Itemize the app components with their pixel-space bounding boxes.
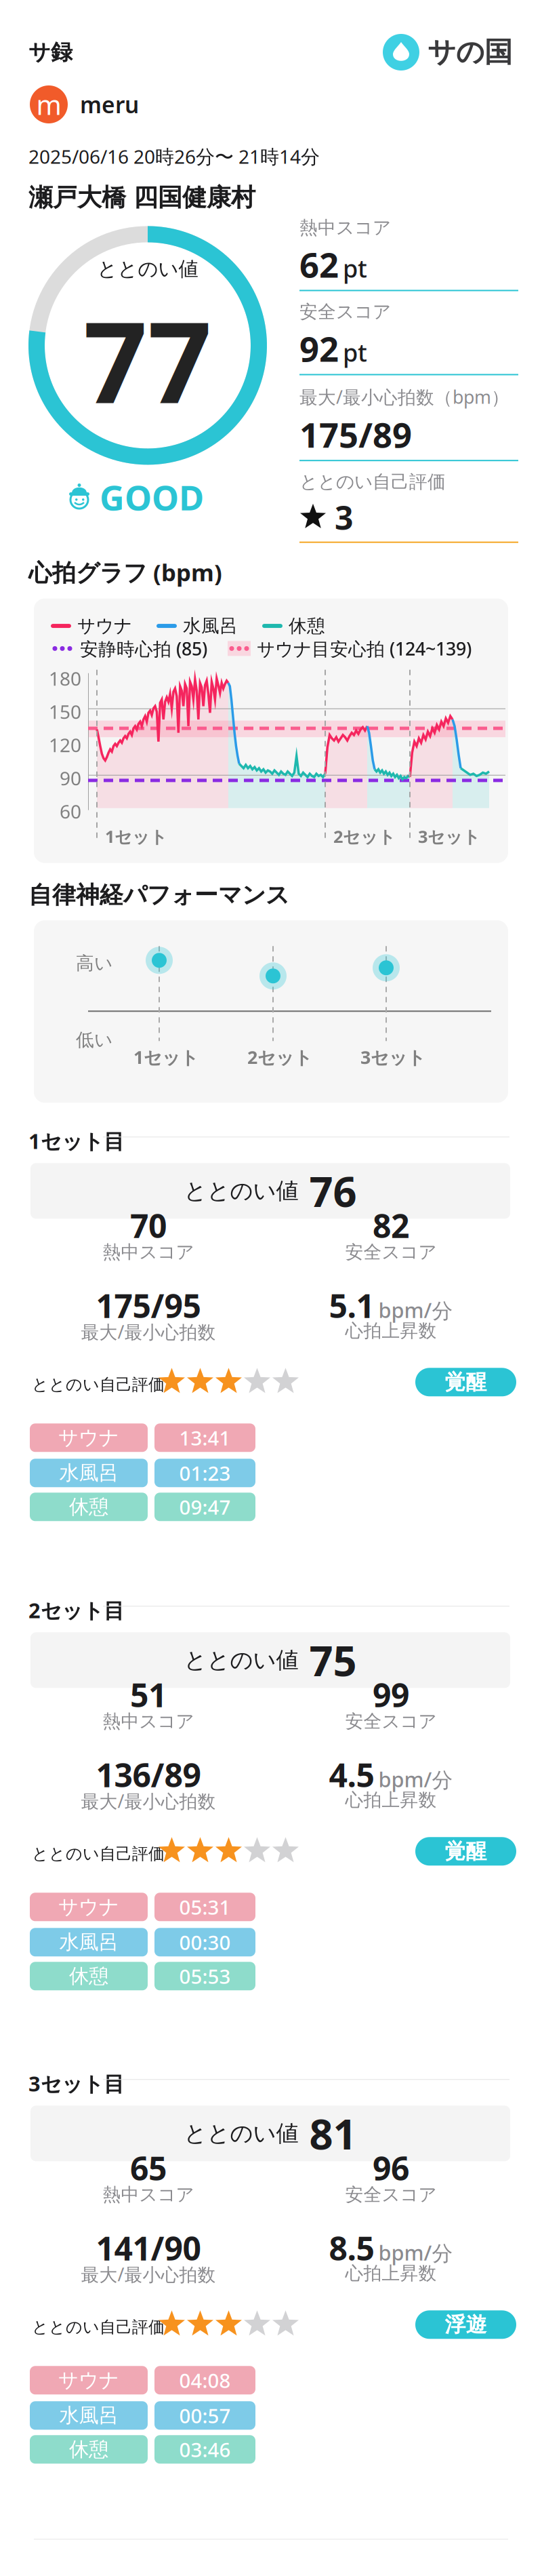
button[interactable]: 浮遊: [415, 2310, 516, 2339]
staticText: 4.5: [329, 1753, 374, 1796]
staticText: 瀬戸大橋 四国健康村: [28, 183, 255, 213]
staticText: サの国: [428, 35, 512, 69]
staticText: 05:31: [179, 1894, 231, 1920]
staticText: サウナ: [77, 615, 132, 637]
staticText: 96: [373, 2146, 409, 2189]
staticText: 水風呂: [59, 1930, 118, 1954]
staticText: サ録: [28, 39, 72, 66]
staticText: ととのい自己評価: [32, 2317, 165, 2337]
staticText: GOOD: [100, 474, 204, 520]
staticText: meru: [80, 89, 139, 119]
staticText: 09:47: [179, 1494, 231, 1520]
staticText: サウナ目安心拍 (124~139): [257, 637, 472, 661]
staticText: 熱中スコア: [103, 1710, 194, 1733]
staticText: 82: [373, 1204, 409, 1247]
staticText: サウナ: [58, 1426, 119, 1450]
staticText: 水風呂: [59, 1461, 118, 1485]
staticText: 99: [373, 1673, 409, 1716]
staticText: 熱中スコア: [103, 1241, 194, 1263]
staticText: 3セット: [418, 825, 480, 848]
staticText: pt: [343, 336, 367, 368]
staticText: bpm/分: [378, 1296, 453, 1324]
staticText: 05:53: [179, 1963, 231, 1989]
staticText: サウナ: [58, 1895, 119, 1919]
staticText: 77: [83, 285, 212, 434]
staticText: 5.1: [329, 1284, 374, 1327]
staticText: 覚醒: [445, 1369, 487, 1395]
staticText: 休憩: [69, 1495, 108, 1519]
staticText: 低い: [76, 1029, 112, 1051]
staticText: 90: [60, 765, 81, 791]
staticText: 00:57: [179, 2402, 231, 2429]
staticText: 安全スコア: [345, 1241, 437, 1263]
staticText: 150: [49, 699, 81, 724]
staticText: ととのい自己評価: [32, 1375, 165, 1395]
staticText: ととのい値: [97, 257, 198, 281]
staticText: 安全スコア: [345, 2184, 437, 2206]
staticText: 最大/最小心拍数（bpm）: [299, 385, 509, 409]
staticText: 水風呂: [183, 615, 238, 637]
staticText: 熱中スコア: [103, 2184, 194, 2206]
staticText: 01:23: [179, 1460, 231, 1486]
button[interactable]: 覚醒: [415, 1368, 516, 1396]
staticText: 04:08: [179, 2367, 231, 2393]
staticText: 136/89: [96, 1753, 201, 1796]
staticText: 心拍上昇数: [345, 1789, 437, 1811]
button[interactable]: m: [0, 85, 139, 123]
staticText: bpm/分: [378, 1765, 453, 1793]
staticText: ととのい値: [184, 1646, 298, 1674]
staticText: 2025/06/16 20時26分〜 21時14分: [28, 144, 320, 169]
staticText: 最大/最小心拍数: [81, 2262, 216, 2286]
staticText: 安全スコア: [299, 301, 391, 323]
staticText: 62: [299, 242, 339, 287]
staticText: ととのい値: [184, 2120, 298, 2147]
staticText: 熱中スコア: [299, 217, 391, 239]
staticText: 1セット: [105, 825, 167, 848]
staticText: 水風呂: [59, 2403, 118, 2428]
staticText: 最大/最小心拍数: [81, 1320, 216, 1344]
staticText: 3セット目: [28, 2070, 125, 2097]
staticText: 120: [49, 732, 81, 757]
staticText: 休憩: [69, 2437, 108, 2462]
staticText: 13:41: [179, 1424, 231, 1451]
button[interactable]: 覚醒: [415, 1837, 516, 1866]
staticText: 自律神経パフォーマンス: [28, 881, 289, 909]
staticText: 8.5: [329, 2226, 374, 2270]
staticText: 最大/最小心拍数: [81, 1789, 216, 1813]
staticText: ととのい値: [184, 1177, 298, 1205]
staticText: 心拍上昇数: [345, 1320, 437, 1342]
staticText: 00:30: [179, 1929, 231, 1955]
staticText: 休憩: [69, 1964, 108, 1988]
staticText: 76: [309, 1163, 357, 1218]
staticText: 51: [130, 1673, 167, 1716]
staticText: 81: [309, 2106, 357, 2161]
staticText: pt: [343, 252, 367, 284]
staticText: 180: [49, 666, 81, 691]
staticText: 2セット目: [28, 1596, 125, 1624]
staticText: ととのい自己評価: [32, 1844, 165, 1864]
staticText: 心拍上昇数: [345, 2262, 437, 2284]
staticText: 休憩: [289, 615, 325, 637]
staticText: サウナ: [58, 2368, 119, 2392]
staticText: 175/89: [299, 412, 412, 457]
staticText: 70: [130, 1204, 167, 1247]
staticText: 1セット目: [28, 1127, 125, 1155]
staticText: 浮遊: [445, 2312, 487, 2337]
staticText: 141/90: [96, 2226, 201, 2270]
staticText: ととのい自己評価: [299, 471, 446, 493]
staticText: 心拍グラフ (bpm): [28, 556, 222, 588]
staticText: 覚醒: [445, 1839, 487, 1864]
staticText: 高い: [76, 952, 112, 974]
staticText: m: [36, 86, 61, 122]
staticText: 安静時心拍 (85): [80, 637, 207, 661]
staticText: 2セット: [247, 1045, 312, 1069]
staticText: 3セット: [360, 1045, 425, 1069]
staticText: 65: [130, 2146, 167, 2189]
staticText: 1セット: [133, 1045, 199, 1069]
staticText: 175/95: [96, 1284, 201, 1327]
staticText: 92: [299, 326, 339, 371]
staticText: 3: [335, 496, 353, 539]
staticText: 安全スコア: [345, 1710, 437, 1733]
staticText: 2セット: [333, 825, 396, 848]
staticText: 03:46: [179, 2436, 231, 2463]
